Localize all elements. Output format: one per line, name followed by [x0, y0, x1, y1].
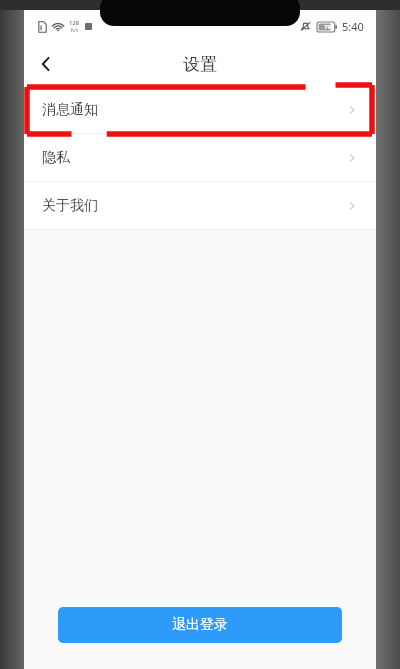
button[interactable]: 退出登录 — [58, 607, 342, 643]
button[interactable]: 关于我们 — [24, 182, 376, 229]
staticText: 消息通知 — [42, 101, 98, 119]
staticText: 设置 — [183, 54, 217, 75]
staticText: K/s — [71, 27, 79, 34]
staticText: 退出登录 — [172, 616, 228, 634]
button[interactable]: 隐私 — [24, 134, 376, 181]
staticText: 关于我们 — [42, 197, 98, 215]
staticText: 隐私 — [42, 149, 70, 167]
button[interactable]: 消息通知 — [24, 86, 376, 133]
staticText: 5:40 — [342, 19, 364, 34]
button[interactable]: Back — [24, 42, 68, 86]
staticText: 128 — [69, 19, 80, 27]
staticText: 79 — [324, 23, 331, 31]
